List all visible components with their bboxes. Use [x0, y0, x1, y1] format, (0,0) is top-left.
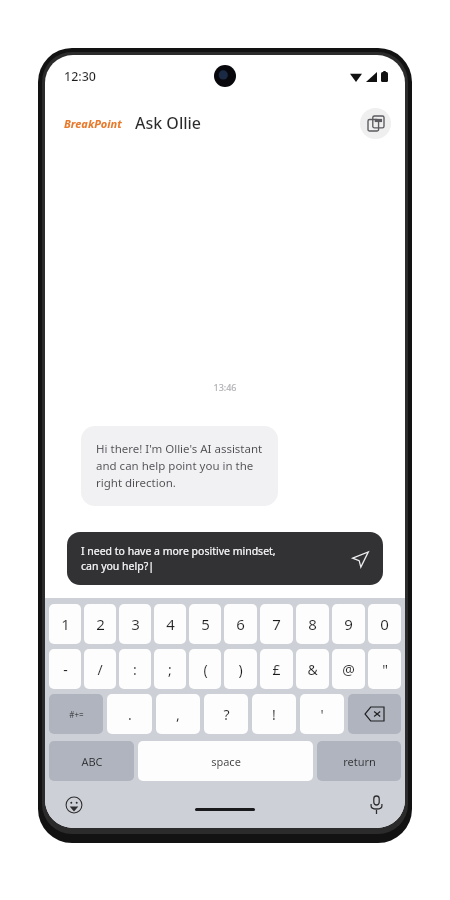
staticText: '	[320, 705, 324, 724]
staticText: ;	[168, 660, 172, 679]
button[interactable]: space	[138, 741, 313, 781]
button[interactable]: 5	[189, 604, 221, 644]
staticText: 2	[96, 614, 105, 634]
staticText: :	[133, 660, 137, 679]
staticText: BreakPoint	[64, 116, 122, 131]
staticText: #+=	[69, 709, 84, 720]
staticText: 3	[131, 614, 140, 634]
button[interactable]: (	[189, 649, 221, 689]
button[interactable]: I need to have a more positive mindset, …	[67, 532, 383, 585]
staticText: 4	[166, 614, 175, 634]
button[interactable]: Hi there! I'm Ollie's AI assistant and c…	[81, 426, 278, 506]
staticText: ?	[223, 705, 230, 724]
button[interactable]: !	[252, 694, 296, 734]
button[interactable]: ?	[204, 694, 248, 734]
button[interactable]: Backspace	[348, 694, 401, 734]
button[interactable]: Emoji	[63, 794, 85, 816]
button[interactable]: Voice input	[365, 794, 387, 816]
staticText: (	[203, 660, 208, 679]
button[interactable]: 0	[368, 604, 401, 644]
staticText: 5	[201, 614, 210, 634]
staticText: 13:46	[45, 381, 405, 393]
button[interactable]: ;	[154, 649, 186, 689]
button[interactable]: 1	[49, 604, 81, 644]
button[interactable]: ABC	[49, 741, 134, 781]
button[interactable]: ,	[156, 694, 200, 734]
staticText: -	[63, 660, 68, 679]
button[interactable]: 2	[84, 604, 116, 644]
staticText: /	[97, 660, 103, 679]
button[interactable]: return	[317, 741, 401, 781]
staticText: £	[272, 660, 281, 679]
button[interactable]: 8	[296, 604, 329, 644]
staticText: 12:30	[64, 68, 97, 85]
staticText: I need to have a more positive mindset, …	[81, 544, 343, 573]
staticText: ABC	[81, 754, 103, 769]
button[interactable]: 7	[260, 604, 293, 644]
button[interactable]: 9	[332, 604, 365, 644]
staticText: 0	[380, 614, 389, 634]
staticText: 9	[344, 614, 353, 634]
staticText: 1	[61, 614, 70, 634]
staticText: .	[128, 705, 132, 724]
button[interactable]: 4	[154, 604, 186, 644]
button[interactable]: &	[296, 649, 329, 689]
button[interactable]: 3	[119, 604, 151, 644]
button[interactable]: .	[107, 694, 152, 734]
button[interactable]: £	[260, 649, 293, 689]
button[interactable]: -	[49, 649, 81, 689]
staticText: Ask Ollie	[135, 112, 202, 134]
button[interactable]: :	[119, 649, 151, 689]
staticText: @	[342, 660, 355, 679]
button[interactable]: @	[332, 649, 365, 689]
staticText: "	[382, 660, 388, 679]
button[interactable]: "	[368, 649, 401, 689]
button[interactable]: New chat	[360, 108, 391, 139]
button[interactable]: Send	[349, 548, 371, 570]
button[interactable]: #+=	[49, 694, 103, 734]
button[interactable]: /	[84, 649, 116, 689]
staticText: !	[272, 705, 276, 724]
staticText: ,	[176, 705, 180, 724]
staticText: Hi there! I'm Ollie's AI assistant and c…	[96, 441, 263, 491]
staticText: )	[238, 660, 243, 679]
staticText: 7	[272, 614, 281, 634]
staticText: space	[211, 754, 241, 769]
staticText: 8	[308, 614, 317, 634]
button[interactable]: )	[224, 649, 257, 689]
staticText: 6	[236, 614, 245, 634]
button[interactable]: 6	[224, 604, 257, 644]
staticText: return	[343, 754, 376, 769]
staticText: &	[307, 660, 318, 679]
button[interactable]: '	[300, 694, 344, 734]
